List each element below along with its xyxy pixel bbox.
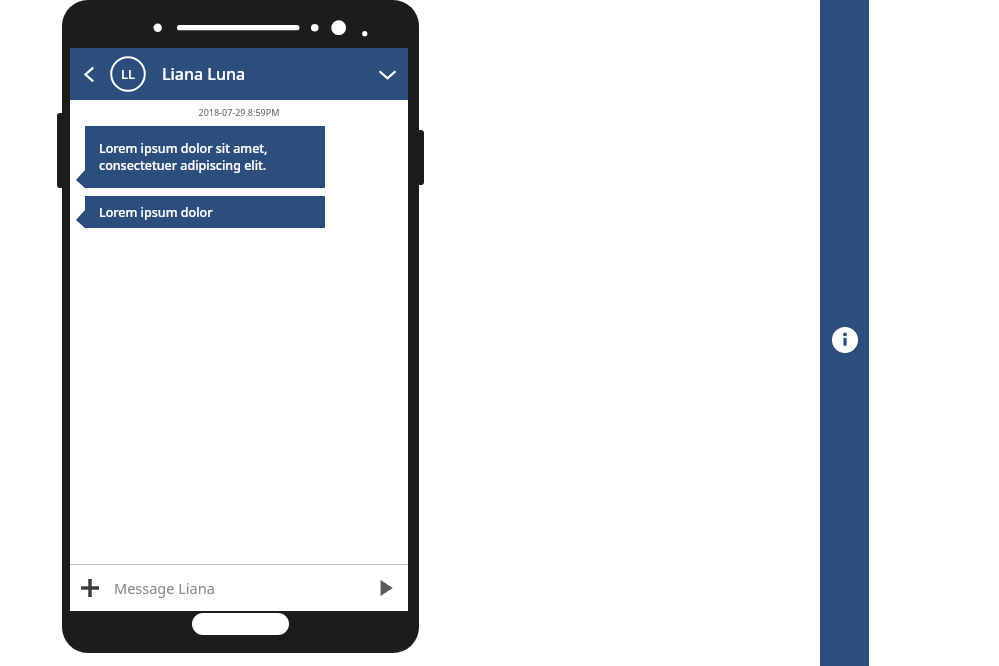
button[interactable]: More options	[366, 53, 408, 95]
button[interactable]: Send	[364, 566, 408, 610]
staticText: LL	[121, 65, 135, 83]
button[interactable]: LL	[110, 56, 146, 92]
staticText: Message Liana	[114, 578, 215, 598]
button[interactable]: Add attachment	[70, 568, 110, 608]
button[interactable]: Message Liana	[114, 565, 364, 611]
button[interactable]: Home	[192, 613, 289, 635]
button[interactable]: Lorem ipsum dolor	[85, 196, 325, 228]
button[interactable]: Back	[70, 55, 108, 93]
staticText: 2018-07-29 8:59PM	[70, 106, 408, 118]
staticText: Lorem ipsum dolor	[99, 204, 311, 221]
button[interactable]: Information	[832, 327, 858, 353]
button[interactable]: Lorem ipsum dolor sit amet, consectetuer…	[85, 126, 325, 188]
staticText: Lorem ipsum dolor sit amet, consectetuer…	[99, 140, 311, 174]
staticText: Liana Luna	[162, 63, 366, 85]
